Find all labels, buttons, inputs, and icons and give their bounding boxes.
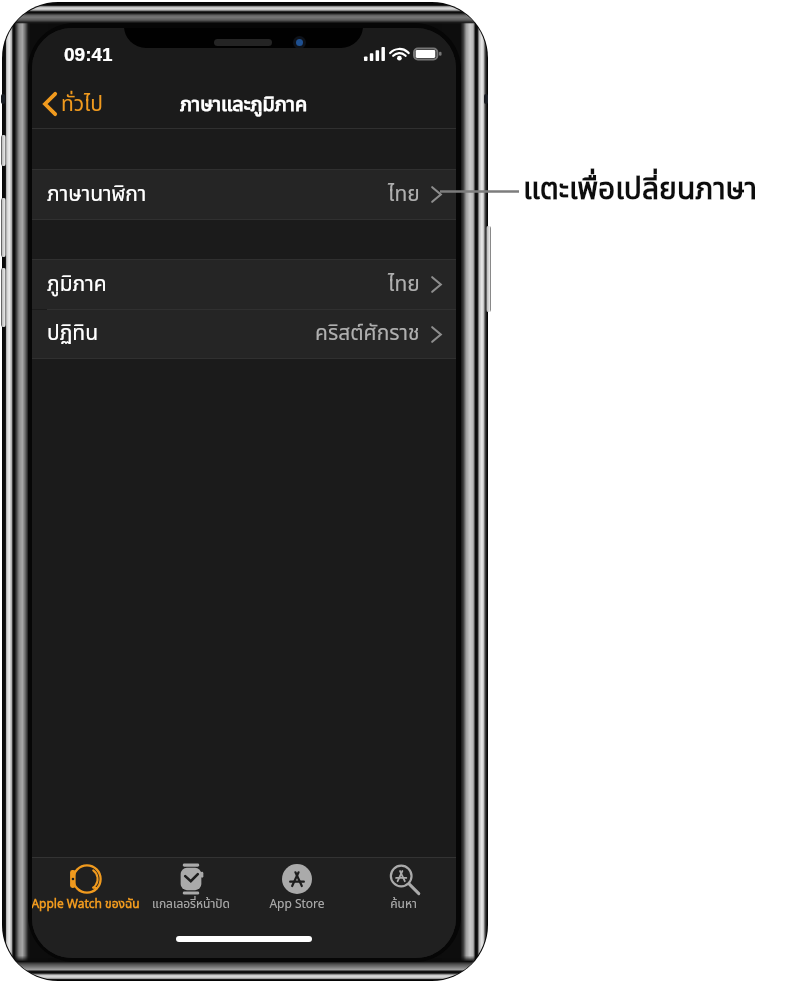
staticText: ภาษาและภูมิภาค (180, 90, 308, 120)
button[interactable]: ปฏิทิน (32, 310, 456, 358)
button[interactable]: Apple Watch ของฉัน (32, 858, 138, 913)
button[interactable]: ภูมิภาค (32, 260, 456, 309)
staticText: Apple Watch ของฉัน (32, 895, 140, 913)
staticText: แกลเลอรี่หน้าปัด (152, 895, 230, 913)
button[interactable]: ค้นหา (350, 858, 456, 913)
staticText: ไทย (388, 179, 420, 211)
staticText: ค้นหา (390, 895, 417, 913)
staticText: ภูมิภาค (47, 269, 107, 301)
staticText: 09:41 (64, 44, 113, 65)
button[interactable]: ภาษานาฬิกา (32, 170, 456, 219)
staticText: ไทย (388, 269, 420, 301)
staticText: ทั่วไป (61, 89, 103, 121)
button[interactable]: App Store (244, 858, 350, 913)
staticText: ปฏิทิน (47, 318, 99, 350)
staticText: ภาษานาฬิกา (47, 179, 147, 211)
staticText: App Store (269, 895, 325, 913)
staticText: คริสต์ศักราช (315, 318, 420, 350)
button[interactable]: Back to General (38, 82, 107, 126)
staticText: แตะเพื่อเปลี่ยนภาษา (523, 167, 757, 212)
button[interactable]: แกลเลอรี่หน้าปัด (138, 858, 244, 913)
